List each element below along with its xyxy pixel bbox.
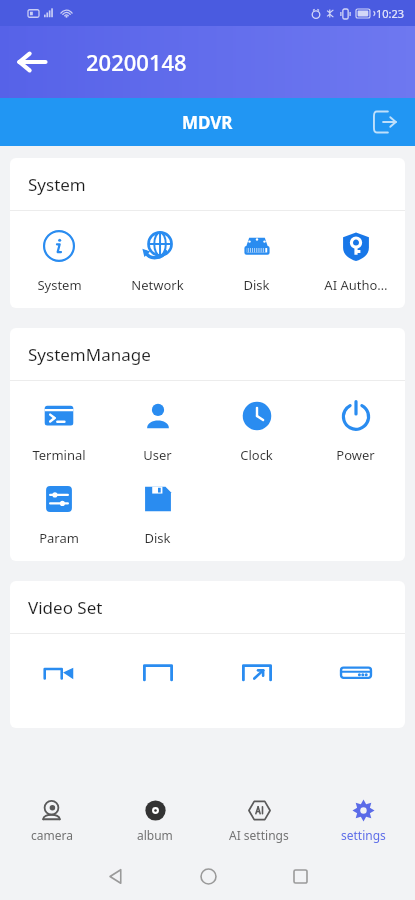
staticText: System (28, 173, 86, 196)
staticText: Disk (144, 529, 171, 547)
button[interactable]: album (103, 790, 207, 852)
button[interactable]: AI settings (207, 790, 311, 852)
button[interactable]: Param (10, 480, 108, 547)
staticText: MDVR (182, 111, 233, 134)
button[interactable]: Disk (108, 480, 207, 547)
staticText: 10:23 (376, 6, 405, 21)
staticText: Clock (240, 446, 273, 464)
button[interactable]: VideoCam (10, 650, 108, 688)
staticText: 20200148 (86, 47, 187, 77)
staticText: camera (31, 827, 73, 843)
button[interactable]: Recorder (306, 650, 405, 688)
staticText: System (37, 276, 82, 294)
staticText: settings (341, 827, 386, 843)
staticText: Terminal (32, 446, 86, 464)
button[interactable]: Clock (207, 397, 306, 464)
button[interactable]: System (10, 227, 108, 294)
staticText: AI settings (229, 827, 289, 843)
button[interactable]: Back (8, 38, 56, 86)
staticText: SystemManage (28, 343, 151, 366)
staticText: Param (39, 529, 79, 547)
button[interactable]: ScreenArrow (207, 650, 306, 688)
button[interactable]: camera (0, 790, 103, 852)
button[interactable]: Exit (365, 102, 405, 142)
staticText: AI Autho… (324, 276, 388, 294)
staticText: Disk (243, 276, 270, 294)
staticText: User (143, 446, 172, 464)
button[interactable]: AI Autho… (306, 227, 405, 294)
button[interactable]: Disk (207, 227, 306, 294)
button[interactable]: Power (306, 397, 405, 464)
button[interactable]: settings (311, 790, 415, 852)
button[interactable]: Screen (108, 650, 207, 688)
staticText: Power (336, 446, 375, 464)
staticText: album (137, 827, 173, 843)
button[interactable]: Terminal (10, 397, 108, 464)
staticText: Video Set (28, 596, 103, 619)
staticText: Network (131, 276, 184, 294)
button[interactable]: User (108, 397, 207, 464)
button[interactable]: Network (108, 227, 207, 294)
